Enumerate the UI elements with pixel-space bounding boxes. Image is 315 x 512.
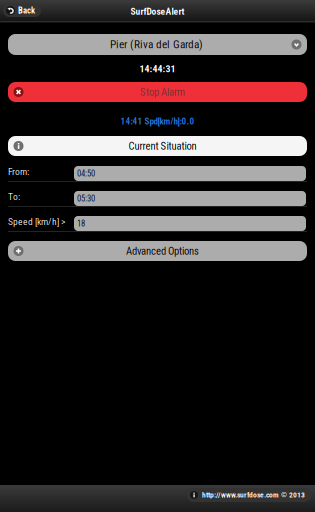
staticText: Pier (Riva del Garda) — [110, 38, 203, 51]
staticText: 18 — [77, 218, 85, 229]
staticText: 14:41 Spd[km/h]:0.0 — [120, 116, 194, 127]
staticText: 04:50 — [77, 168, 95, 179]
staticText: http://www.surfdose.com © 2013 — [202, 490, 305, 499]
button[interactable]: Pier (Riva del Garda) — [8, 34, 307, 55]
button[interactable]: Stop Alarm — [8, 82, 307, 102]
button[interactable]: Advanced Options — [8, 241, 307, 261]
button[interactable]: Speed [km/h] > — [8, 207, 307, 232]
button[interactable]: http://www.surfdose.com © 2013 — [187, 488, 311, 502]
staticText: SurfDoseAlert — [130, 6, 184, 17]
staticText: 05:30 — [77, 193, 95, 204]
staticText: 14:44:31 — [139, 63, 175, 75]
button[interactable]: Current Situation — [8, 136, 307, 156]
button[interactable]: From: — [8, 157, 307, 182]
staticText: Current Situation — [128, 140, 196, 152]
button[interactable]: To: — [8, 182, 307, 207]
staticText: From: — [8, 166, 29, 177]
staticText: Stop Alarm — [140, 86, 185, 98]
staticText: Advanced Options — [126, 245, 199, 257]
staticText: Back — [18, 5, 35, 16]
staticText: Speed [km/h] > — [8, 216, 65, 227]
staticText: To: — [8, 191, 20, 202]
button[interactable]: Back — [3, 4, 41, 17]
